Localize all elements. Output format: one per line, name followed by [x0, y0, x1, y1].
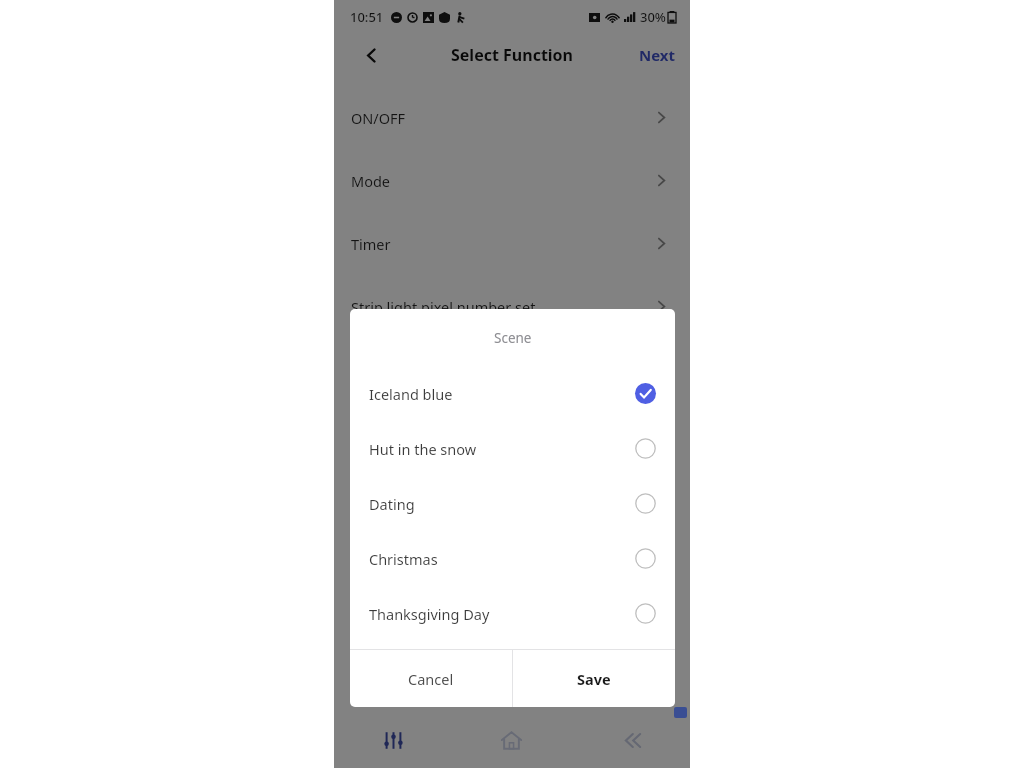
button[interactable]: Hut in the snow [350, 421, 675, 476]
staticText: Timer [351, 234, 391, 254]
button[interactable]: Timer [334, 212, 690, 275]
staticText: Select Function [451, 44, 574, 66]
staticText: Thanksgiving Day [369, 604, 490, 624]
staticText: Hut in the snow [369, 439, 477, 459]
staticText: 30% [640, 8, 666, 26]
staticText: Save [577, 669, 611, 689]
button[interactable]: Mode [334, 149, 690, 212]
staticText: ON/OFF [351, 108, 406, 128]
staticText: Mode [351, 171, 391, 191]
button[interactable]: Next [625, 37, 690, 73]
staticText: Cancel [408, 669, 454, 689]
button[interactable]: Thanksgiving Day [350, 586, 675, 641]
button[interactable]: Recents [334, 712, 452, 768]
button[interactable]: Cancel [350, 650, 512, 707]
button[interactable]: Dating [350, 476, 675, 531]
button[interactable]: Home [452, 712, 571, 768]
staticText: Strip light pixel number set [351, 297, 536, 317]
button[interactable]: Strip light pixel number set [334, 275, 690, 338]
button[interactable]: Iceland blue [350, 366, 675, 421]
staticText: Iceland blue [369, 384, 453, 404]
button[interactable]: Back [356, 40, 386, 70]
staticText: Next [639, 45, 676, 65]
staticText: Christmas [369, 549, 438, 569]
staticText: 10:51 [350, 8, 384, 26]
button[interactable]: Back [571, 712, 690, 768]
staticText: Scene [494, 329, 532, 347]
button[interactable]: ON/OFF [334, 86, 690, 149]
button[interactable]: Christmas [350, 531, 675, 586]
staticText: Dating [369, 494, 415, 514]
button[interactable]: Save [513, 650, 675, 707]
